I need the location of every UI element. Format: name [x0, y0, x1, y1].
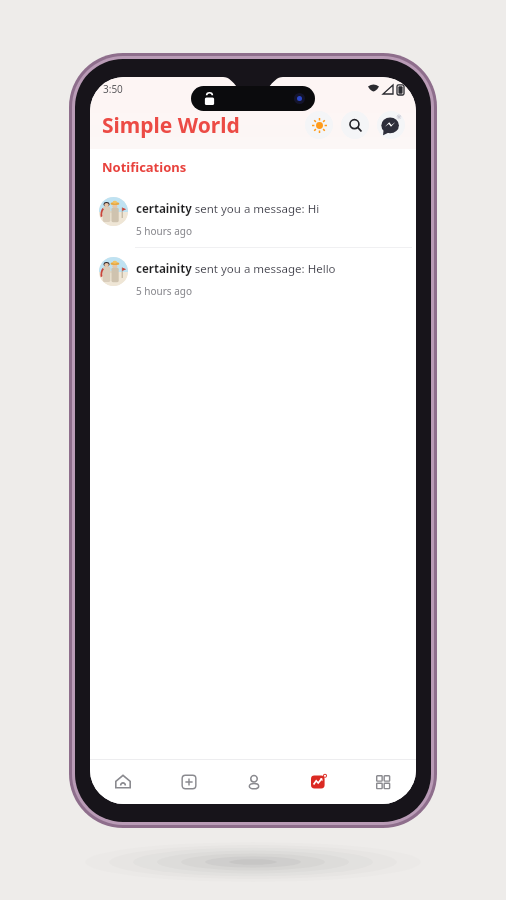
staticText: 5 hours ago — [136, 224, 193, 238]
button[interactable]: certainity sent you a message: Hello — [90, 248, 416, 307]
button[interactable]: Messenger — [377, 111, 405, 139]
staticText: certainity sent you a message: Hello — [136, 261, 336, 277]
staticText: 3:50 — [103, 82, 123, 96]
staticText: Simple World — [102, 111, 240, 140]
staticText: certainity sent you a message: Hi — [136, 201, 320, 217]
button[interactable]: Home — [90, 760, 156, 804]
staticText: 5 hours ago — [136, 284, 193, 298]
button[interactable]: Search — [341, 111, 369, 139]
button[interactable]: Activity — [286, 760, 351, 804]
button[interactable]: More — [351, 760, 416, 804]
staticText: Notifications — [102, 158, 187, 176]
button[interactable]: Theme — [305, 111, 333, 139]
button[interactable]: Create — [156, 760, 221, 804]
button[interactable]: certainity sent you a message: Hi — [90, 188, 416, 247]
button[interactable]: Profile — [221, 760, 286, 804]
